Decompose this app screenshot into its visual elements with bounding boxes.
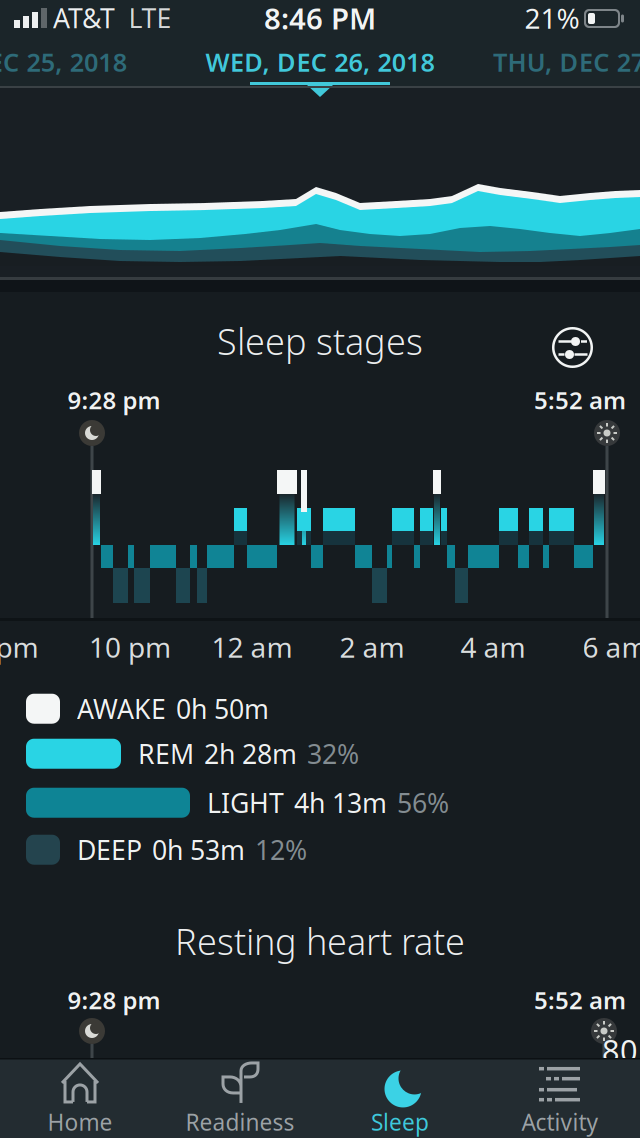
button[interactable]: WED, DEC 26, 2018	[180, 40, 460, 84]
staticText: 5:52 am	[534, 984, 626, 1016]
staticText: 21%	[524, 0, 579, 37]
staticText: AWAKE	[77, 691, 166, 726]
staticText: 12 am	[211, 628, 292, 666]
staticText: LTE	[128, 0, 171, 36]
staticText: Sleep	[371, 1107, 429, 1137]
button[interactable]: DEC 25, 2018	[0, 40, 148, 84]
staticText: WED, DEC 26, 2018	[206, 45, 434, 79]
staticText: Resting heart rate	[175, 917, 465, 965]
staticText: 10 pm	[89, 628, 171, 666]
staticText: 12%	[255, 832, 307, 867]
staticText: Activity	[521, 1107, 598, 1137]
button[interactable]: Activity	[480, 1062, 640, 1136]
staticText: 4 am	[460, 628, 525, 666]
staticText: pm	[0, 628, 38, 666]
staticText: 4h 13m	[294, 785, 387, 820]
button[interactable]: Readiness	[160, 1062, 320, 1136]
staticText: 0h 53m	[152, 832, 245, 867]
staticText: 0h 50m	[176, 691, 269, 726]
button[interactable]: THU, DEC 27, 2018	[465, 40, 640, 84]
staticText: 6 am	[582, 628, 640, 666]
staticText: AT&T	[53, 0, 115, 36]
staticText: 80	[602, 1030, 638, 1070]
staticText: 5:52 am	[534, 384, 626, 416]
staticText: REM	[138, 736, 194, 771]
button[interactable]	[537, 312, 593, 368]
button[interactable]: Home	[0, 1062, 160, 1136]
staticText: THU, DEC 27, 2018	[493, 45, 640, 79]
staticText: 56%	[397, 785, 449, 820]
staticText: DEC 25, 2018	[0, 45, 127, 79]
button[interactable]: Sleep	[320, 1062, 480, 1136]
staticText: DEEP	[77, 832, 142, 867]
staticText: 9:28 pm	[67, 984, 160, 1016]
staticText: 2 am	[339, 628, 404, 666]
staticText: Readiness	[185, 1107, 294, 1137]
staticText: LIGHT	[207, 785, 284, 820]
staticText: 9:28 pm	[67, 384, 160, 416]
staticText: Home	[47, 1107, 112, 1137]
staticText: 32%	[307, 736, 359, 771]
staticText: 2h 28m	[204, 736, 297, 771]
staticText: 8:46 PM	[264, 0, 376, 37]
staticText: Sleep stages	[217, 317, 423, 365]
